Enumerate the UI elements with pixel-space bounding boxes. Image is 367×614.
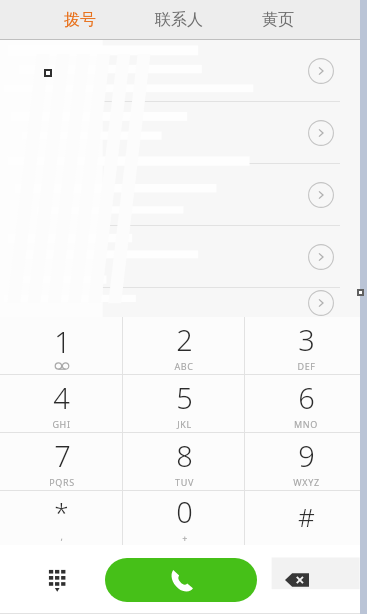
button[interactable]: 6 (245, 375, 367, 432)
staticText: 拨号 (64, 10, 96, 30)
staticText: , (60, 530, 64, 542)
staticText: WXYZ (293, 476, 320, 488)
button[interactable]: Call details (0, 288, 367, 317)
staticText: DEF (297, 360, 316, 372)
button[interactable]: Call details (308, 244, 334, 270)
button[interactable]: 2 (123, 317, 245, 374)
button[interactable]: Call details (0, 102, 367, 164)
button[interactable]: 7 (0, 433, 123, 490)
button[interactable]: 5 (123, 375, 245, 432)
button[interactable]: 4 (0, 375, 123, 432)
staticText: 4 (53, 378, 70, 417)
staticText: 黄页 (262, 10, 294, 30)
staticText: 2 (176, 320, 193, 359)
button[interactable]: Call details (0, 164, 367, 226)
button[interactable]: Call details (0, 40, 367, 102)
staticText: 联系人 (155, 10, 203, 30)
staticText: + (182, 532, 188, 544)
button[interactable]: Call details (308, 290, 334, 316)
button[interactable]: # (245, 491, 367, 545)
staticText: 7 (54, 436, 71, 475)
button[interactable]: Call details (0, 226, 367, 288)
button[interactable]: * (0, 491, 123, 545)
staticText: JKL (177, 418, 192, 430)
staticText: 0 (176, 492, 193, 531)
staticText: 9 (298, 436, 315, 475)
staticText: 5 (176, 378, 193, 417)
button[interactable]: Backspace (281, 564, 313, 596)
button[interactable]: Hide keypad (44, 565, 74, 595)
button[interactable]: 黄页 (228, 0, 327, 40)
button[interactable]: Call details (308, 120, 334, 146)
staticText: MNO (294, 418, 318, 430)
button[interactable]: 联系人 (129, 0, 228, 40)
staticText: TUV (175, 476, 194, 488)
button[interactable]: Call (105, 558, 257, 602)
button[interactable]: 1 (0, 317, 123, 374)
button[interactable]: 0 (123, 491, 245, 545)
staticText: 8 (176, 436, 193, 475)
staticText: 6 (298, 378, 315, 417)
button[interactable]: 拨号 (30, 0, 129, 40)
button[interactable]: 3 (245, 317, 367, 374)
staticText: * (54, 494, 69, 529)
staticText: PQRS (49, 476, 75, 488)
button[interactable]: 9 (245, 433, 367, 490)
staticText: # (298, 499, 315, 534)
staticText: ABC (174, 360, 194, 372)
staticText: 3 (298, 320, 315, 359)
button[interactable]: Call details (308, 182, 334, 208)
button[interactable]: Call details (308, 58, 334, 84)
staticText: GHI (52, 418, 71, 430)
staticText: 1 (54, 322, 71, 361)
button[interactable]: 8 (123, 433, 245, 490)
